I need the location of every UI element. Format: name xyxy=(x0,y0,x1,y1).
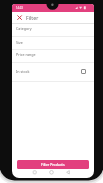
button[interactable]: Size xyxy=(12,37,94,50)
button[interactable] xyxy=(81,69,86,74)
button[interactable]: Price range xyxy=(12,49,94,63)
staticText: Filter xyxy=(26,14,39,21)
button[interactable]: Filter Products xyxy=(17,160,89,169)
staticText: In stock xyxy=(16,69,30,74)
staticText: Category xyxy=(16,26,32,31)
button[interactable]: Category xyxy=(12,23,94,37)
button[interactable] xyxy=(12,168,94,174)
staticText: Size xyxy=(16,40,23,45)
button[interactable] xyxy=(12,61,94,85)
staticText: 14:23 xyxy=(16,6,23,10)
staticText: Price range xyxy=(16,52,36,57)
staticText: Filter Products xyxy=(41,162,65,167)
button[interactable] xyxy=(17,15,22,20)
